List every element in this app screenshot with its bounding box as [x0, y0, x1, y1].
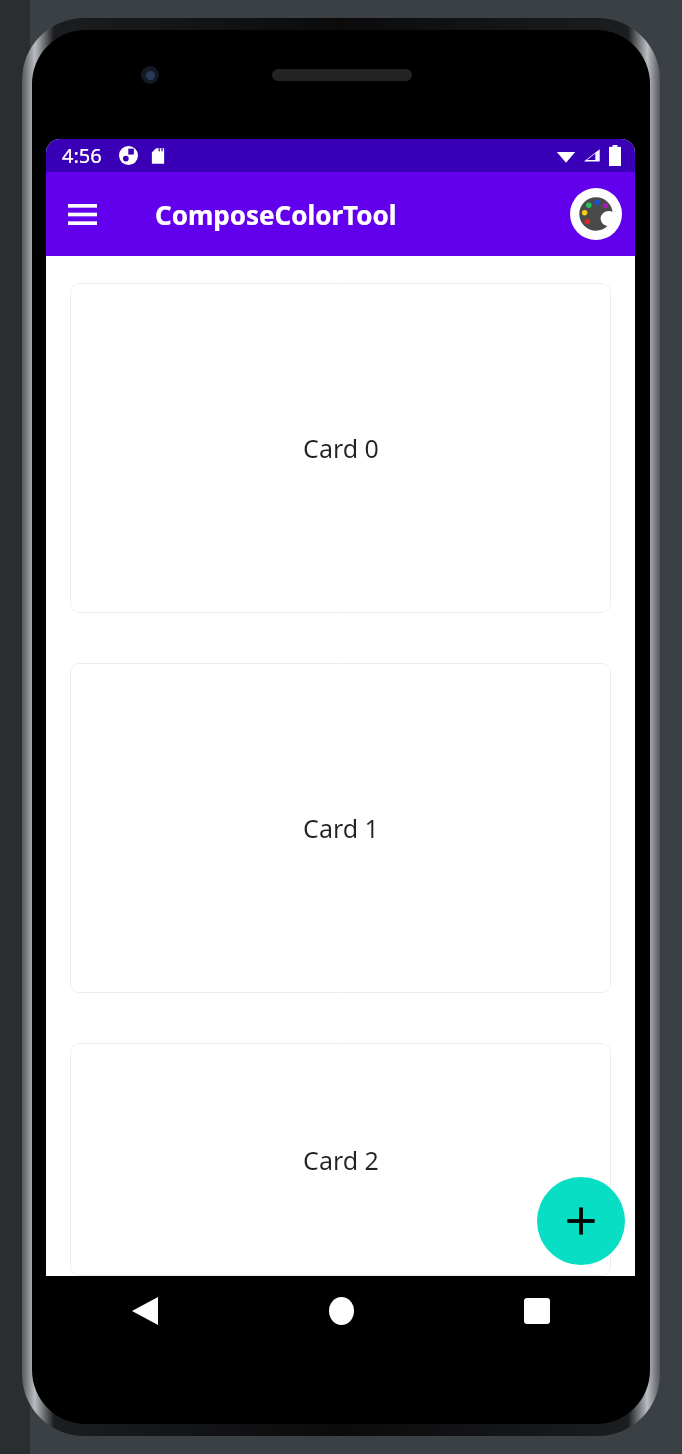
button[interactable]: Add	[537, 1177, 625, 1265]
staticText: 4:56	[62, 142, 102, 169]
button[interactable]: Card 2	[70, 1043, 611, 1276]
button[interactable]: Recent apps	[439, 1276, 635, 1350]
button[interactable]: Card 0	[70, 283, 611, 613]
button[interactable]: Card 1	[70, 663, 611, 993]
button[interactable]: Home	[243, 1276, 439, 1350]
staticText: Card 1	[303, 811, 379, 845]
button[interactable]: Open navigation menu	[54, 186, 110, 242]
button[interactable]: Color palette	[570, 188, 622, 240]
staticText: Card 2	[303, 1143, 379, 1177]
button[interactable]: Back	[46, 1276, 243, 1350]
staticText: ComposeColorTool	[155, 197, 397, 232]
staticText: Card 0	[303, 431, 379, 465]
